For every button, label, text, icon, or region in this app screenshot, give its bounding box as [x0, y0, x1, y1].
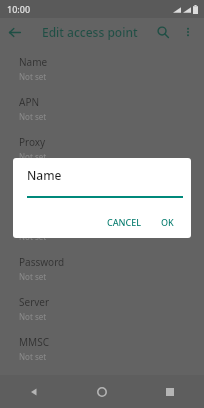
- button[interactable]: Proxy: [0, 130, 204, 170]
- button[interactable]: Port: [0, 170, 204, 210]
- staticText: APN: [19, 95, 40, 109]
- button[interactable]: Recent apps: [136, 375, 204, 408]
- staticText: 10:00: [7, 3, 31, 15]
- staticText: Not set: [19, 311, 47, 322]
- staticText: MMSC: [19, 335, 49, 349]
- staticText: Not set: [19, 71, 47, 82]
- staticText: Not set: [19, 391, 47, 402]
- button[interactable]: Server: [0, 290, 204, 330]
- staticText: Server: [19, 295, 50, 309]
- staticText: Not set: [19, 111, 47, 122]
- button[interactable]: Back: [0, 375, 68, 408]
- button[interactable]: MMS proxy: [0, 370, 204, 408]
- staticText: Not set: [19, 231, 47, 242]
- staticText: Name: [19, 55, 48, 69]
- button[interactable]: Home: [68, 375, 136, 408]
- button[interactable]: APN: [0, 90, 204, 130]
- button[interactable]: Username: [0, 210, 204, 250]
- staticText: Edit access point: [42, 24, 150, 40]
- staticText: Port: [19, 175, 39, 189]
- staticText: OK: [161, 216, 174, 228]
- button[interactable]: Name: [0, 50, 204, 90]
- staticText: Proxy: [19, 135, 46, 149]
- button[interactable]: More options: [176, 20, 200, 44]
- button[interactable]: CANCEL: [102, 213, 147, 231]
- staticText: Not set: [19, 351, 47, 362]
- staticText: Not set: [19, 271, 47, 282]
- staticText: Not set: [19, 151, 47, 162]
- staticText: CANCEL: [107, 216, 142, 228]
- staticText: Password: [19, 255, 65, 269]
- staticText: Name: [27, 167, 62, 183]
- button[interactable]: Search: [150, 19, 176, 45]
- button[interactable]: Password: [0, 250, 204, 290]
- button[interactable]: OK: [156, 213, 179, 231]
- staticText: Not set: [19, 191, 47, 202]
- button[interactable]: MMSC: [0, 330, 204, 370]
- button[interactable]: Back: [0, 18, 28, 46]
